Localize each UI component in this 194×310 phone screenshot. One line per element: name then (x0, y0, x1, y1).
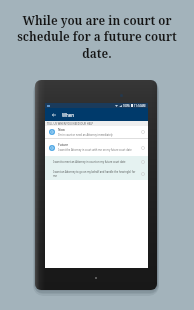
staticText: 11:14 AM (134, 104, 146, 108)
staticText: I want the Attorney in court with me on … (58, 148, 132, 152)
staticText: 100% (123, 104, 130, 108)
staticText: I want an Attorney to go on my behalf an… (53, 170, 139, 177)
staticText: Future (58, 143, 69, 147)
button[interactable]: Future (45, 139, 148, 156)
button[interactable]: I want an Attorney to go on my behalf an… (45, 167, 148, 180)
staticText: TELL US WHEN YOU NEED OUR HELP (47, 122, 94, 126)
staticText: While you are in court or schedule for a… (3, 12, 191, 62)
staticText: I want to meet an Attorney in court on m… (53, 160, 139, 164)
staticText: Now (58, 128, 65, 132)
button[interactable]: Now (45, 126, 148, 138)
button[interactable]: Back (51, 112, 57, 118)
staticText: When (62, 112, 74, 118)
button[interactable]: I want to meet an Attorney in court on m… (45, 156, 148, 167)
staticText: I'm in court or need an Attorney immedia… (58, 133, 113, 137)
